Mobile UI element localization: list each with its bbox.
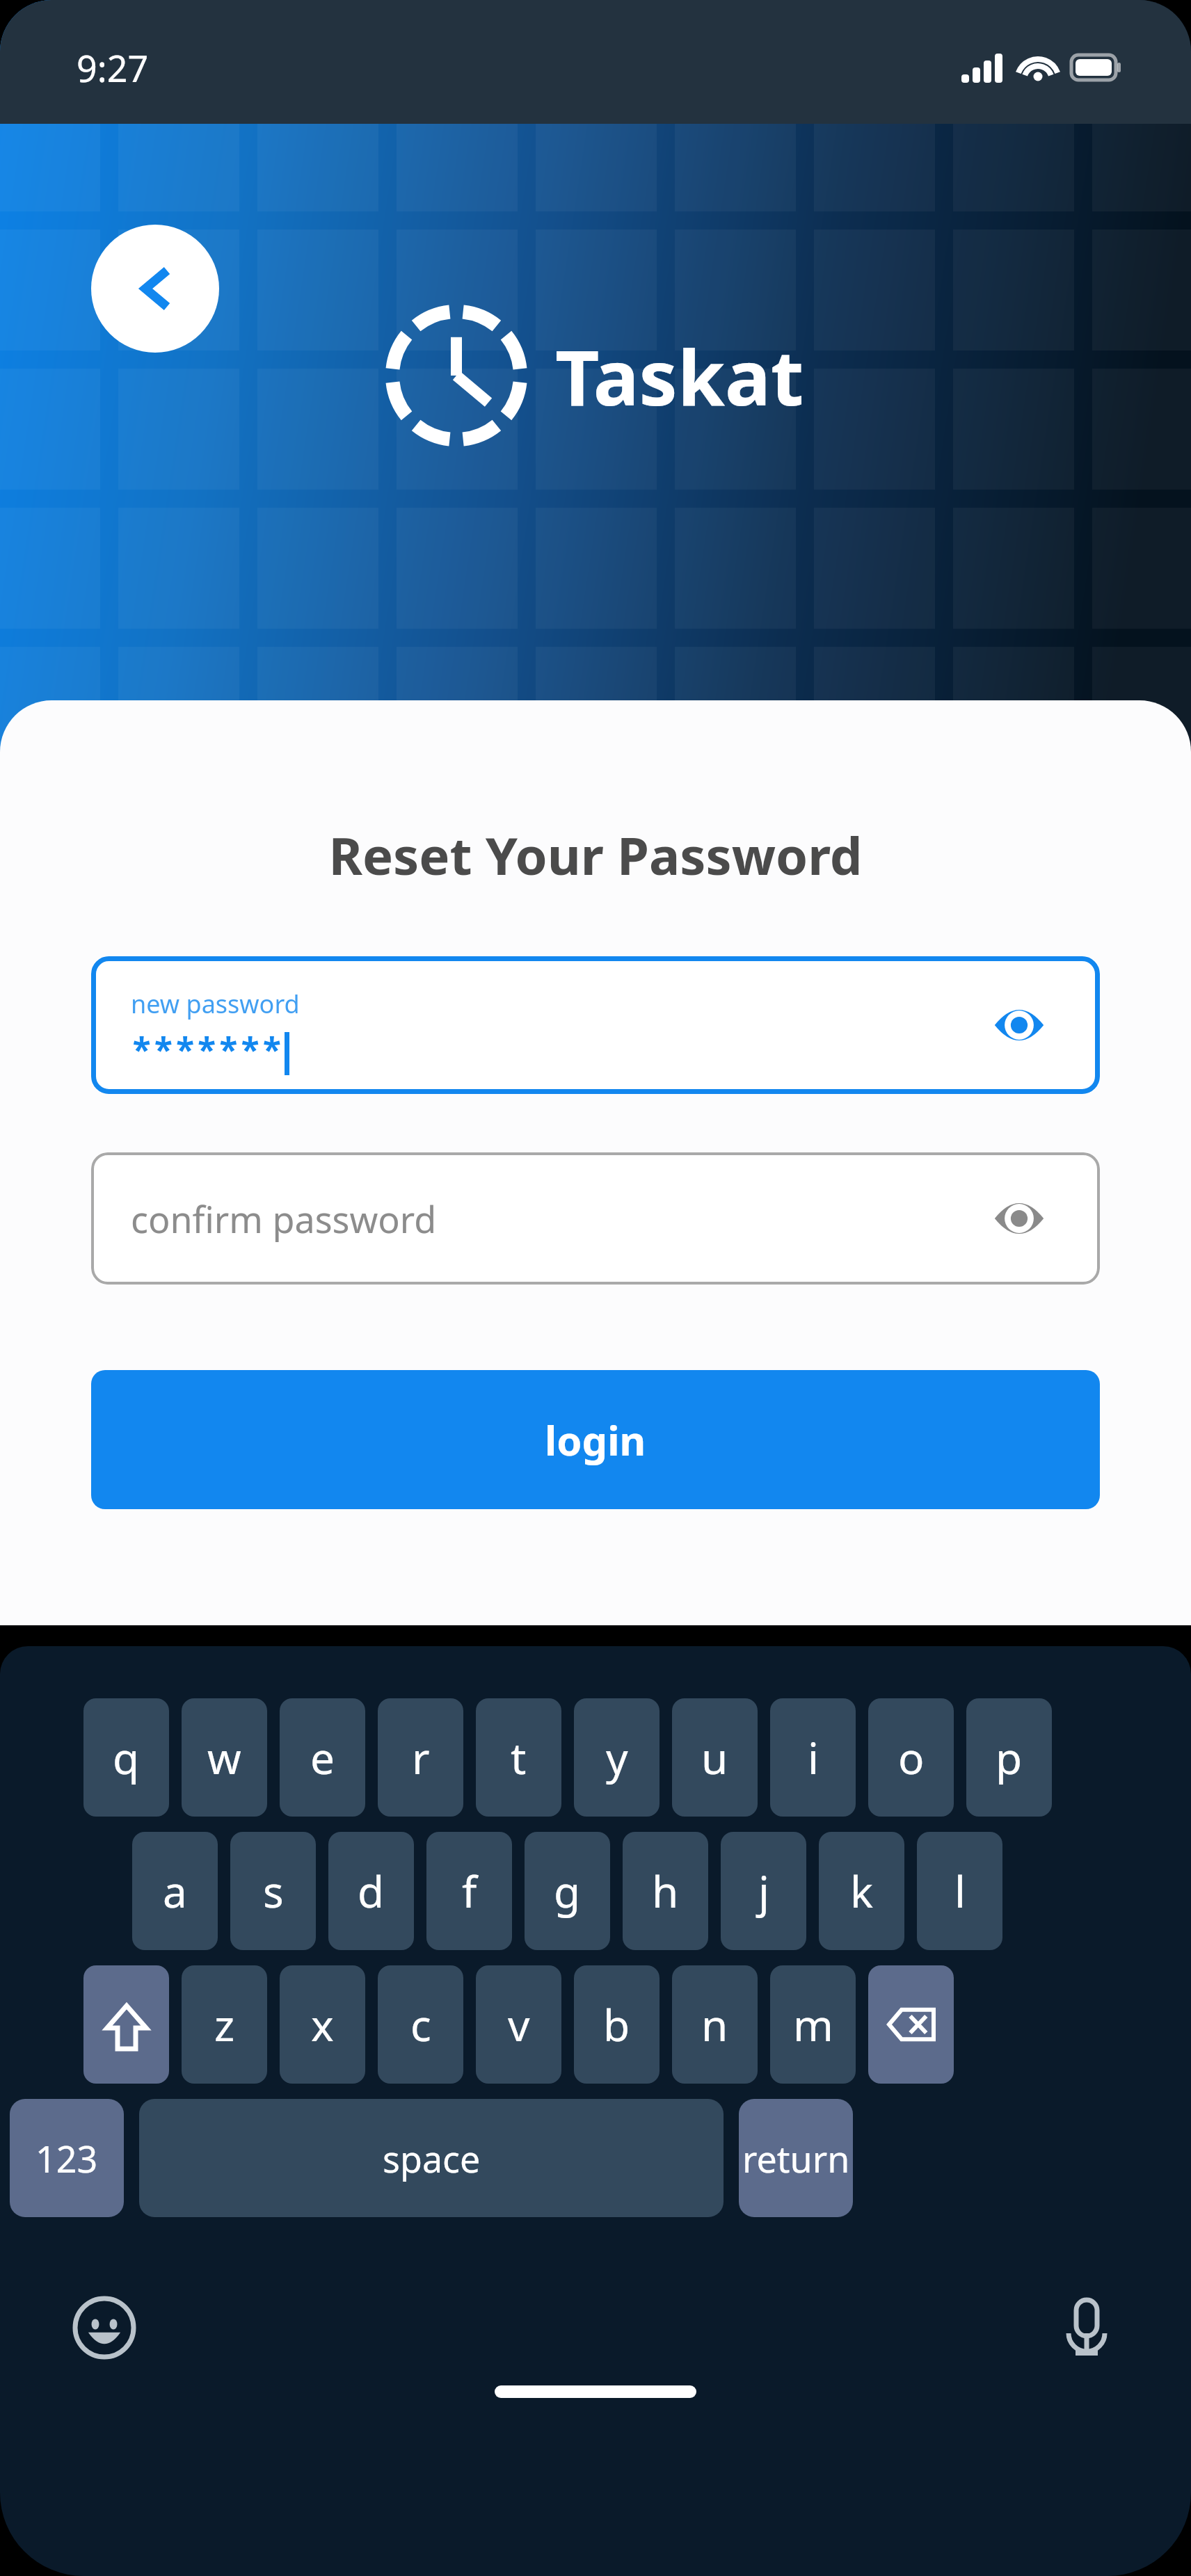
staticText: l (954, 1862, 966, 1920)
button[interactable]: Back (91, 225, 219, 353)
button[interactable]: Voice input (1052, 2293, 1121, 2362)
button[interactable]: y (574, 1698, 660, 1817)
staticText: a (163, 1862, 187, 1920)
button[interactable]: t (476, 1698, 561, 1817)
button[interactable]: p (966, 1698, 1052, 1817)
button[interactable]: n (672, 1965, 758, 2084)
button[interactable]: Emoji (70, 2293, 139, 2362)
staticText: g (554, 1862, 581, 1920)
button[interactable]: g (525, 1832, 610, 1950)
button[interactable]: h (623, 1832, 708, 1950)
staticText: Reset Your Password (0, 820, 1191, 890)
staticText: 9:27 (77, 43, 149, 92)
staticText: f (462, 1862, 477, 1920)
button[interactable]: q (83, 1698, 169, 1817)
button[interactable]: return (739, 2099, 853, 2217)
staticText: e (310, 1728, 335, 1787)
staticText: j (758, 1862, 769, 1920)
staticText: d (358, 1862, 385, 1920)
button[interactable]: r (378, 1698, 463, 1817)
button[interactable]: m (770, 1965, 856, 2084)
staticText: v (508, 1995, 530, 2054)
button[interactable]: o (868, 1698, 954, 1817)
staticText: space (383, 2134, 481, 2183)
button[interactable]: space (139, 2099, 724, 2217)
button[interactable]: d (328, 1832, 414, 1950)
button[interactable]: Show password (987, 993, 1051, 1057)
staticText: m (793, 1995, 833, 2054)
staticText: ******* (131, 1024, 283, 1074)
staticText: i (808, 1728, 819, 1787)
staticText: s (263, 1862, 284, 1920)
button[interactable]: v (476, 1965, 561, 2084)
button[interactable]: 123 (10, 2099, 124, 2217)
button[interactable]: s (230, 1832, 316, 1950)
button[interactable]: i (770, 1698, 856, 1817)
staticText: k (850, 1862, 874, 1920)
staticText: confirm password (131, 1194, 437, 1243)
button[interactable]: new password (91, 956, 1100, 1094)
staticText: t (511, 1728, 527, 1787)
button[interactable]: w (182, 1698, 267, 1817)
staticText: return (742, 2134, 850, 2183)
staticText: 123 (35, 2134, 98, 2183)
button[interactable]: l (917, 1832, 1002, 1950)
button[interactable]: u (672, 1698, 758, 1817)
button[interactable]: c (378, 1965, 463, 2084)
staticText: u (701, 1728, 728, 1787)
staticText: new password (131, 987, 300, 1021)
button[interactable]: b (574, 1965, 660, 2084)
staticText: login (545, 1412, 646, 1467)
staticText: o (898, 1728, 925, 1787)
button[interactable]: x (280, 1965, 365, 2084)
staticText: n (701, 1995, 728, 2054)
button[interactable]: login (91, 1370, 1100, 1509)
button[interactable]: Show confirm password (987, 1186, 1051, 1250)
button[interactable]: Shift (83, 1965, 169, 2084)
staticText: r (412, 1728, 430, 1787)
button[interactable]: a (132, 1832, 218, 1950)
staticText: Taskat (555, 323, 804, 428)
staticText: q (113, 1728, 140, 1787)
staticText: z (214, 1995, 235, 2054)
staticText: w (207, 1728, 241, 1787)
staticText: x (311, 1995, 334, 2054)
button[interactable]: k (819, 1832, 904, 1950)
button[interactable]: z (182, 1965, 267, 2084)
button[interactable]: e (280, 1698, 365, 1817)
button[interactable]: j (721, 1832, 806, 1950)
button[interactable]: Backspace (868, 1965, 954, 2084)
staticText: y (606, 1728, 628, 1787)
staticText: b (603, 1995, 630, 2054)
button[interactable]: confirm password (91, 1152, 1100, 1285)
button[interactable]: f (426, 1832, 512, 1950)
staticText: c (410, 1995, 431, 2054)
staticText: h (652, 1862, 679, 1920)
staticText: p (996, 1728, 1023, 1787)
